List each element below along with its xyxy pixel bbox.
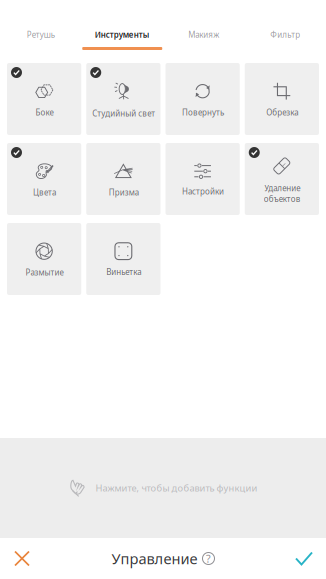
staticText: Фильтр [270, 29, 300, 40]
staticText: Нажмите, чтобы добавить функции [95, 482, 257, 494]
button[interactable]: Обрезка [245, 63, 319, 135]
staticText: Инструменты [95, 29, 150, 40]
staticText: Удаление объектов [263, 183, 300, 204]
button[interactable]: Цвета [7, 143, 81, 215]
staticText: Размытие [25, 267, 63, 278]
button[interactable]: Студийный свет [86, 63, 160, 135]
button[interactable]: Готово [282, 538, 326, 578]
button[interactable]: Размытие [7, 223, 81, 295]
button[interactable]: Виньетка [86, 223, 160, 295]
staticText: Управление [111, 549, 197, 568]
button[interactable]: Инструменты [81, 0, 163, 63]
button[interactable]: Удаление объектов [245, 143, 319, 215]
staticText: Виньетка [106, 267, 141, 277]
staticText: Студийный свет [92, 108, 155, 119]
button[interactable]: Боке [7, 63, 81, 135]
button[interactable]: Фильтр [244, 0, 326, 63]
staticText: Цвета [33, 187, 56, 198]
staticText: Повернуть [182, 107, 224, 118]
button[interactable]: Управление [111, 539, 214, 578]
staticText: Ретушь [27, 29, 55, 40]
button[interactable]: Ретушь [0, 0, 81, 63]
staticText: Обрезка [266, 107, 298, 118]
staticText: ? [206, 551, 211, 566]
button[interactable]: Повернуть [165, 63, 240, 135]
button[interactable]: Отмена [0, 538, 44, 578]
staticText: Настройки [182, 186, 224, 197]
staticText: Призма [108, 187, 138, 198]
button[interactable]: Призма [86, 143, 160, 215]
button[interactable]: Настройки [165, 143, 240, 215]
button[interactable]: Макияж [163, 0, 244, 63]
staticText: Макияж [188, 29, 219, 40]
button[interactable]: Нажмите, чтобы добавить функции [0, 438, 326, 538]
staticText: Боке [35, 107, 53, 118]
